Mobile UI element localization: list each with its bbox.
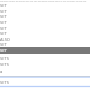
staticText: a [0,69,3,74]
button[interactable]: SETS [0,79,90,85]
staticText: SET [0,3,7,8]
button[interactable]: SET [0,47,90,54]
button[interactable]: ALSO [0,36,90,42]
staticText: the quick brown fox jumps over the lazy … [0,0,90,3]
button[interactable]: SET [0,25,90,31]
staticText: SET [0,48,7,53]
staticText: SETS [0,56,9,61]
button[interactable]: SET [0,13,90,19]
button[interactable]: SET [0,2,90,8]
staticText: SET [0,26,7,31]
button[interactable]: SETS [0,61,90,67]
staticText: SET [0,20,7,25]
staticText: SET [0,31,7,36]
staticText: SETS [0,80,9,85]
staticText: SET [0,42,7,47]
staticText: SET [0,9,7,14]
button[interactable]: SET [0,8,90,14]
button[interactable]: SET [0,41,90,47]
staticText: ALSO [0,37,10,42]
staticText: SETS [0,62,9,67]
button[interactable]: SET [0,30,90,36]
button[interactable]: SET [0,19,90,25]
staticText: SET [0,14,7,19]
button[interactable]: a [0,69,90,74]
button[interactable]: SETS [0,55,90,61]
